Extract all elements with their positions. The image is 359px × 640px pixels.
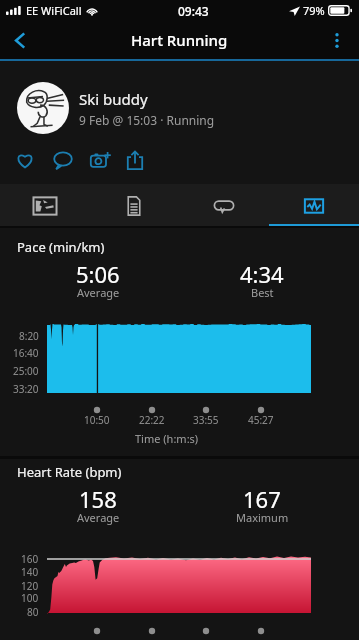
button[interactable]: Add photo — [87, 147, 113, 173]
staticText: 120 — [21, 579, 39, 593]
staticText: 33:55 — [193, 413, 219, 427]
button[interactable]: Back — [0, 21, 40, 59]
staticText: 25:00 — [13, 364, 39, 378]
staticText: 160 — [21, 552, 39, 566]
button[interactable]: Laps — [179, 184, 269, 226]
button[interactable]: Details — [89, 184, 179, 226]
button[interactable]: Like — [12, 147, 38, 173]
staticText: 22:22 — [139, 413, 165, 427]
staticText: 4:34 — [240, 259, 284, 289]
button[interactable]: Charts — [269, 184, 359, 226]
staticText: 9 Feb @ 15:03 · Running — [79, 112, 215, 128]
staticText: 80 — [27, 605, 39, 619]
staticText: Hart Running — [131, 30, 228, 50]
staticText: 16:40 — [13, 346, 39, 360]
staticText: Ski buddy — [79, 89, 148, 109]
staticText: Best — [251, 285, 274, 300]
button[interactable]: Share — [122, 147, 148, 173]
staticText: Average — [77, 510, 120, 525]
staticText: EE WiFiCall — [26, 3, 82, 18]
staticText: Pace (min/km) — [17, 238, 105, 256]
staticText: 10:50 — [84, 413, 110, 427]
staticText: 09:43 — [178, 3, 209, 19]
staticText: 33:20 — [13, 382, 39, 396]
button[interactable]: Map — [0, 184, 89, 226]
staticText: 100 — [21, 591, 39, 605]
staticText: 5:06 — [76, 259, 120, 289]
staticText: 140 — [21, 565, 39, 579]
staticText: Heart Rate (bpm) — [17, 463, 122, 481]
staticText: 158 — [79, 484, 117, 514]
staticText: Time (h:m:s) — [135, 431, 199, 446]
staticText: Maximum — [236, 510, 289, 525]
button[interactable]: More options — [323, 26, 351, 54]
staticText: 167 — [243, 484, 281, 514]
staticText: 8:20 — [19, 329, 39, 343]
staticText: Average — [77, 285, 120, 300]
staticText: 79% — [303, 3, 325, 18]
staticText: 45:27 — [248, 413, 274, 427]
button[interactable]: Comment — [50, 147, 76, 173]
